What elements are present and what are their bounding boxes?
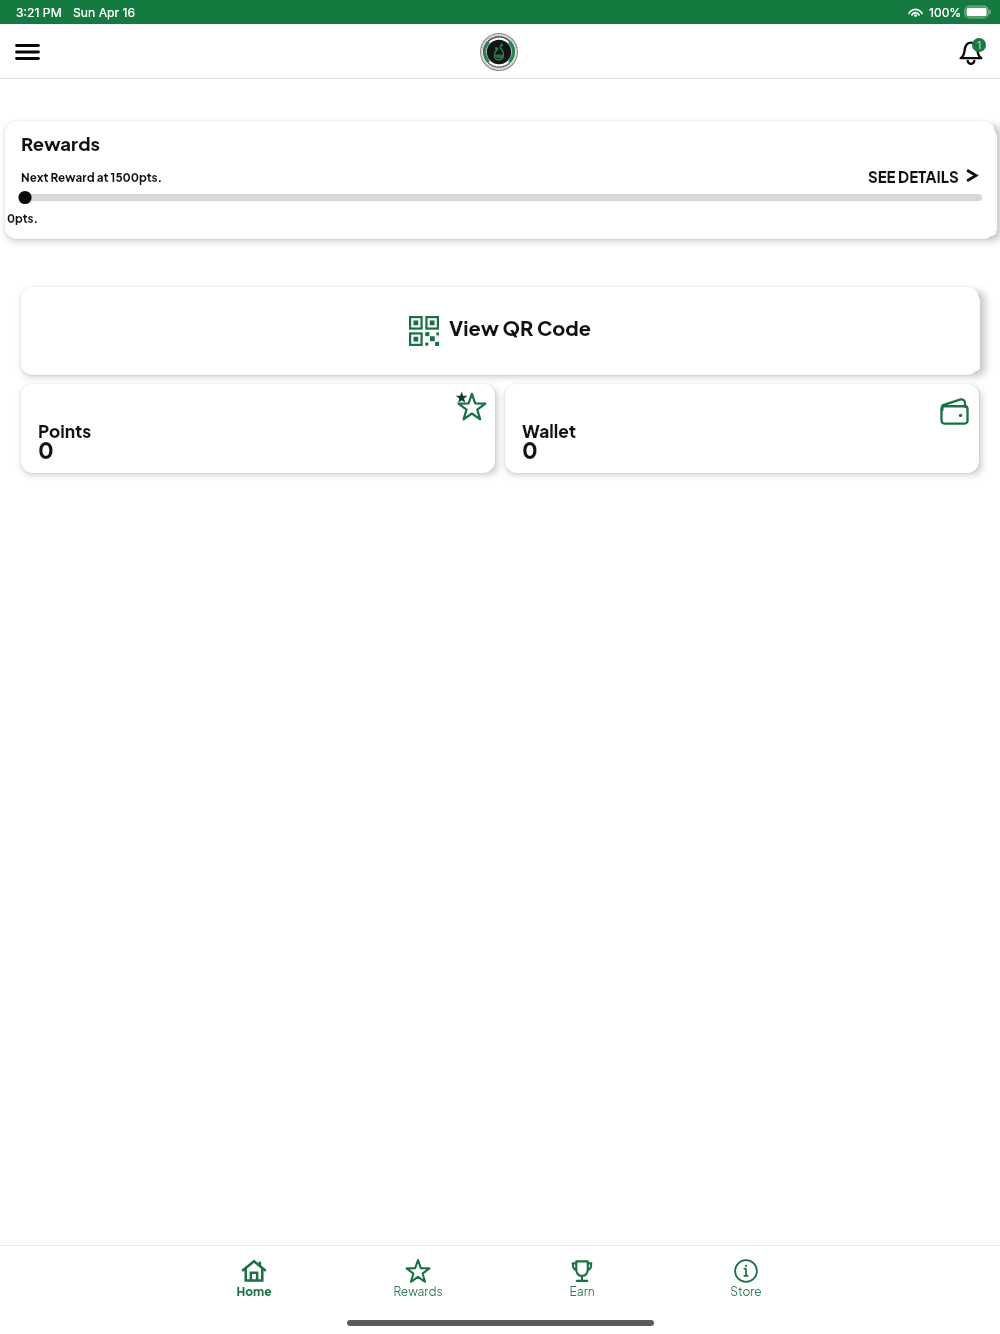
staticText: 1 bbox=[977, 39, 982, 51]
staticText: Home bbox=[236, 1284, 272, 1299]
button[interactable]: View QR Code bbox=[21, 287, 979, 375]
button[interactable]: Open navigation menu bbox=[5, 29, 50, 74]
staticText: Points bbox=[38, 420, 92, 442]
staticText: View QR Code bbox=[449, 315, 591, 340]
button[interactable]: Earn bbox=[500, 1256, 664, 1302]
staticText: 0pts. bbox=[7, 211, 39, 225]
staticText: 0 bbox=[522, 436, 538, 464]
staticText: Rewards bbox=[393, 1284, 443, 1299]
button[interactable]: Rewards bbox=[336, 1256, 500, 1302]
staticText: Wallet bbox=[522, 420, 577, 442]
button[interactable]: Home bbox=[172, 1256, 336, 1302]
staticText: Sun Apr 16 bbox=[73, 5, 136, 20]
staticText: Rewards bbox=[21, 132, 101, 155]
staticText: Next Reward at 1500pts. bbox=[21, 170, 163, 185]
button[interactable]: Rewards bbox=[5, 121, 995, 239]
staticText: 0 bbox=[38, 436, 54, 464]
staticText: Store bbox=[730, 1284, 762, 1299]
button[interactable]: Notifications bbox=[948, 29, 993, 74]
staticText: 100% bbox=[929, 5, 962, 20]
staticText: SEE DETAILS bbox=[868, 167, 959, 186]
staticText: 3:21 PM bbox=[16, 5, 62, 20]
button[interactable]: Points bbox=[21, 384, 495, 473]
button[interactable]: Wallet bbox=[505, 384, 979, 473]
button[interactable]: Store bbox=[664, 1256, 828, 1302]
staticText: Earn bbox=[569, 1284, 595, 1299]
